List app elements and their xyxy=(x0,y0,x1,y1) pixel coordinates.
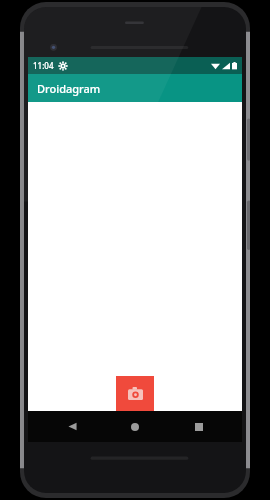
staticText: Droidagram xyxy=(37,81,101,96)
button[interactable]: Take photo xyxy=(116,376,154,411)
button[interactable]: Back xyxy=(52,411,92,442)
button[interactable]: Recent apps xyxy=(179,411,219,442)
button[interactable]: Home xyxy=(115,411,155,442)
staticText: 11:04 xyxy=(33,60,54,71)
